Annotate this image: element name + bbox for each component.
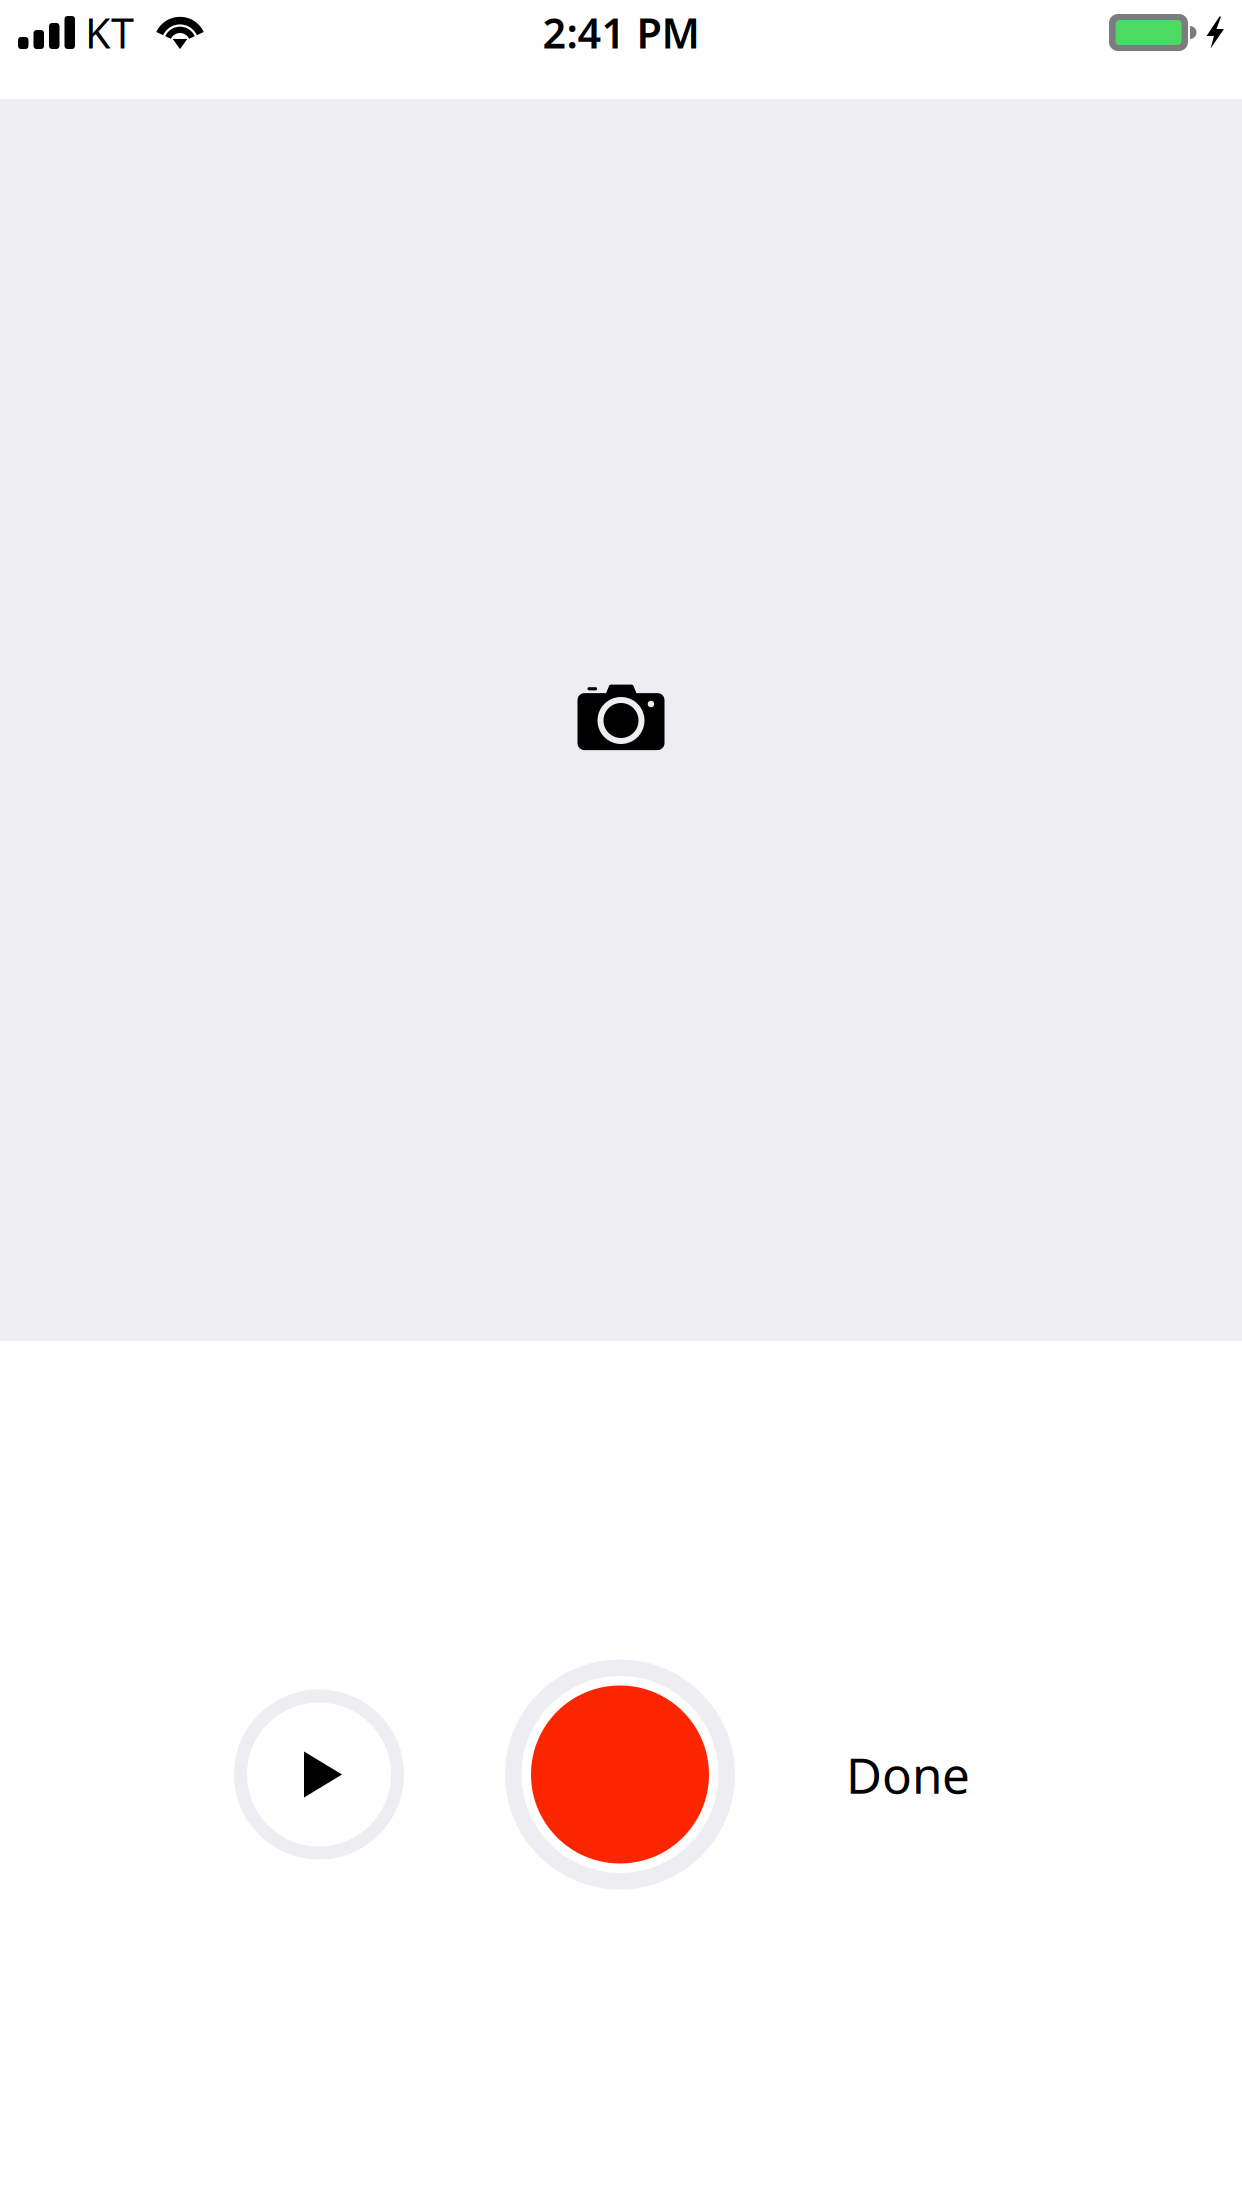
button[interactable]: Play [234, 1689, 404, 1859]
button[interactable]: Record [505, 1659, 735, 1889]
staticText: Done [846, 1742, 970, 1807]
button[interactable]: Done [828, 1714, 988, 1834]
staticText: KT [85, 5, 134, 60]
staticText: 2:41 PM [542, 5, 699, 60]
